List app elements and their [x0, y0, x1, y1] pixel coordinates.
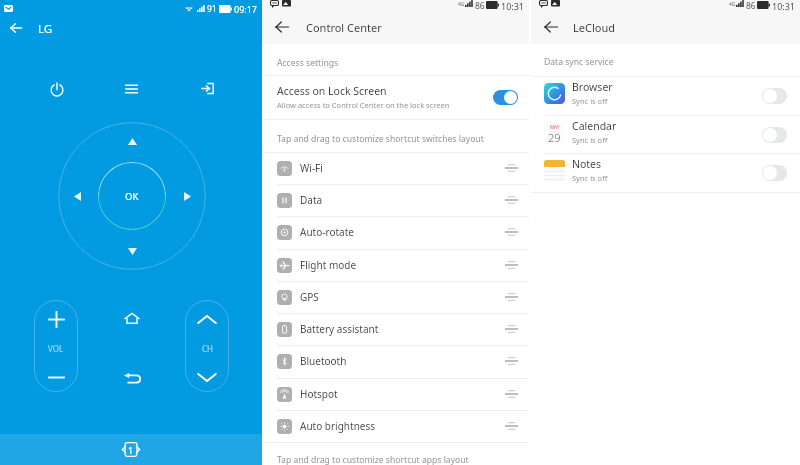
button[interactable]: OK — [98, 162, 166, 230]
button[interactable]: Auto brightness — [262, 410, 529, 442]
staticText: Notes — [572, 157, 602, 171]
button[interactable]: Toggle on — [493, 90, 518, 105]
button[interactable]: Channel up — [185, 302, 229, 336]
staticText: Browser — [572, 80, 613, 94]
button[interactable]: Reorder — [501, 286, 521, 308]
button[interactable]: Reorder — [501, 383, 521, 405]
staticText: Sync is off — [572, 135, 608, 145]
staticText: Tap and drag to customize shortcut apps … — [277, 454, 469, 465]
staticText: Sync is off — [572, 96, 608, 106]
button[interactable]: Hotspot — [262, 378, 529, 410]
button[interactable]: Browser — [531, 76, 800, 115]
staticText: Sync is off — [572, 173, 608, 183]
button[interactable]: Toggle off — [762, 127, 787, 143]
button[interactable]: Reorder — [501, 254, 521, 276]
button[interactable]: Home — [111, 303, 153, 333]
staticText: 86 — [475, 0, 485, 12]
button[interactable]: Input source — [191, 73, 222, 104]
button[interactable]: Remote one — [0, 434, 262, 465]
button[interactable]: Notes — [531, 153, 800, 192]
staticText: 1 — [128, 444, 134, 456]
staticText: Battery assistant — [300, 322, 379, 336]
staticText: 91 — [207, 3, 217, 15]
button[interactable]: Reorder — [501, 189, 521, 211]
staticText: Calendar — [572, 119, 617, 133]
button[interactable]: Access on Lock Screen — [262, 75, 529, 119]
button[interactable]: Volume up — [34, 302, 78, 336]
staticText: 4G — [729, 1, 736, 8]
button[interactable]: Reorder — [501, 350, 521, 372]
staticText: 09:17 — [234, 3, 258, 15]
button[interactable]: Reorder — [501, 318, 521, 340]
staticText: 86 — [746, 0, 756, 12]
staticText: Wi-Fi — [300, 161, 323, 175]
button[interactable]: Auto-rotate — [262, 216, 529, 248]
button[interactable]: GPS — [262, 281, 529, 313]
staticText: Auto brightness — [300, 419, 376, 433]
button[interactable]: Reorder — [501, 415, 521, 437]
staticText: CH — [202, 343, 213, 354]
button[interactable]: Volume down — [34, 360, 78, 394]
staticText: Access on Lock Screen — [277, 84, 387, 98]
button[interactable]: Battery assistant — [262, 313, 529, 345]
staticText: Data — [300, 193, 323, 207]
staticText: VOL — [48, 343, 64, 354]
staticText: Auto-rotate — [300, 225, 354, 239]
button[interactable]: Up — [120, 129, 144, 153]
button[interactable]: Reorder — [501, 157, 521, 179]
button[interactable]: Flight mode — [262, 249, 529, 281]
button[interactable]: Back — [537, 13, 565, 41]
button[interactable]: Back — [2, 14, 30, 42]
staticText: 10:31 — [501, 0, 525, 12]
button[interactable]: Down — [120, 239, 144, 263]
button[interactable]: Back — [111, 363, 153, 393]
staticText: 4G — [458, 1, 465, 8]
button[interactable]: MAY — [531, 115, 800, 154]
button[interactable]: Wi-Fi — [262, 152, 529, 184]
button[interactable]: Channel down — [185, 360, 229, 394]
staticText: Allow access to Control Center on the lo… — [277, 100, 450, 110]
staticText: Bluetooth — [300, 354, 347, 368]
staticText: Tap and drag to customize shortcut switc… — [277, 133, 484, 145]
staticText: Hotspot — [300, 387, 338, 401]
staticText: Flight mode — [300, 258, 357, 272]
staticText: Data sync service — [544, 56, 614, 68]
button[interactable]: Power — [41, 73, 72, 104]
button[interactable]: Right — [175, 184, 199, 208]
staticText: OK — [125, 190, 139, 203]
staticText: 29 — [548, 130, 561, 143]
staticText: LG — [38, 21, 53, 37]
button[interactable]: Toggle off — [762, 88, 787, 104]
staticText: Access settings — [277, 57, 339, 69]
staticText: 10:31 — [772, 0, 796, 12]
button[interactable]: Left — [65, 184, 89, 208]
staticText: Control Center — [306, 20, 382, 35]
button[interactable]: Bluetooth — [262, 345, 529, 377]
button[interactable]: Reorder — [501, 221, 521, 243]
staticText: GPS — [300, 290, 319, 304]
staticText: LeCloud — [573, 20, 615, 35]
staticText: MAY — [550, 124, 560, 130]
button[interactable]: Data — [262, 184, 529, 216]
button[interactable]: Back — [268, 13, 296, 41]
button[interactable]: Menu — [116, 73, 147, 104]
button[interactable]: Toggle off — [762, 165, 787, 181]
